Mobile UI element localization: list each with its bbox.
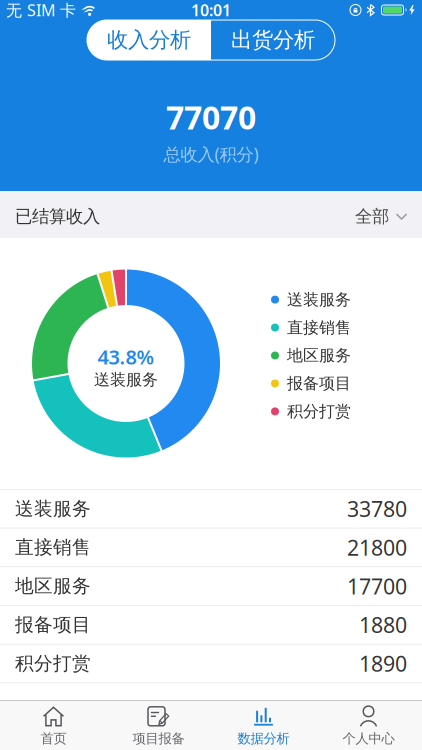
staticText: 已结算收入 (15, 206, 100, 227)
button[interactable]: 出货分析 (211, 20, 335, 60)
staticText: 积分打赏 (15, 652, 91, 675)
staticText: 17700 (347, 572, 407, 600)
staticText: 报备项目 (15, 613, 91, 636)
staticText: 个人中心 (342, 730, 394, 747)
staticText: 1890 (359, 649, 407, 678)
staticText: 送装服务 (287, 290, 351, 309)
staticText: 全部 (355, 206, 389, 227)
button[interactable]: 项目报备 (106, 701, 211, 750)
staticText: 无 SIM 卡 (6, 0, 76, 21)
button[interactable]: 收入分析 (87, 20, 211, 60)
staticText: 77070 (166, 96, 256, 138)
staticText: 报备项目 (287, 374, 351, 393)
staticText: 收入分析 (107, 27, 191, 53)
button[interactable]: 个人中心 (316, 701, 421, 750)
staticText: 直接销售 (287, 318, 351, 337)
staticText: 10:01 (191, 0, 231, 21)
staticText: 21800 (347, 533, 407, 561)
staticText: 1880 (359, 611, 407, 639)
staticText: 43.8% (97, 343, 154, 370)
button[interactable]: 首页 (1, 701, 106, 750)
staticText: 积分打赏 (287, 402, 351, 421)
staticText: 送装服务 (15, 497, 91, 520)
staticText: 送装服务 (94, 370, 158, 390)
staticText: 项目报备 (132, 730, 184, 747)
button[interactable]: 数据分析 (211, 701, 316, 750)
staticText: 33780 (347, 494, 407, 523)
staticText: 数据分析 (237, 730, 289, 747)
staticText: 总收入(积分) (163, 142, 258, 165)
staticText: 地区服务 (15, 575, 91, 597)
staticText: 出货分析 (231, 27, 315, 53)
staticText: 首页 (40, 730, 66, 747)
staticText: 直接销售 (15, 536, 91, 559)
button[interactable]: 全部 (355, 204, 407, 225)
staticText: 地区服务 (287, 346, 351, 365)
